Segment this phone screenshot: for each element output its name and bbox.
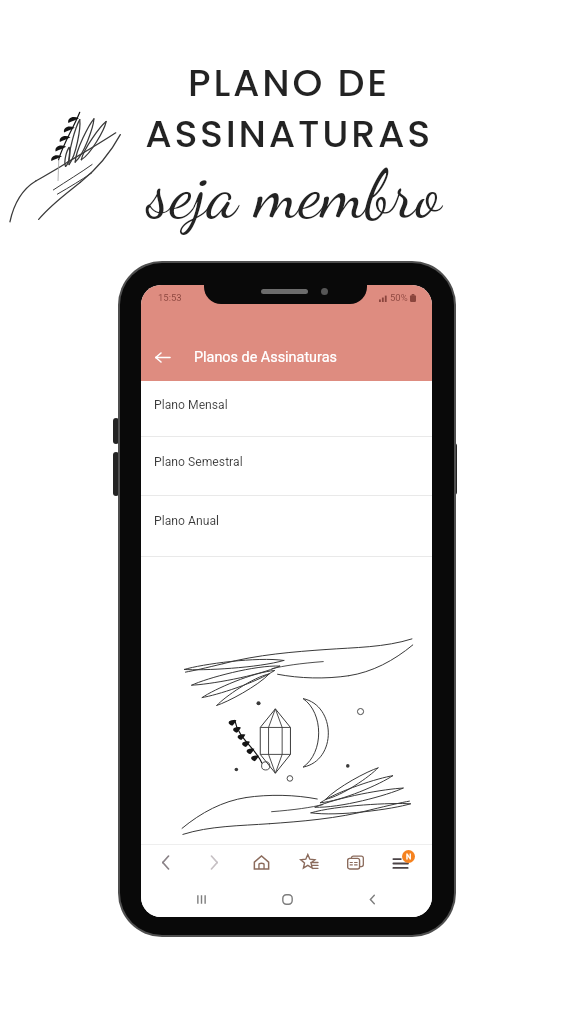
staticText: 50% bbox=[390, 292, 408, 303]
staticText: Plano Anual bbox=[154, 514, 219, 528]
button[interactable]: Plano Semestral bbox=[141, 437, 432, 495]
button[interactable]: Plano Mensal bbox=[141, 381, 432, 436]
button[interactable]: Avançar bbox=[198, 845, 230, 880]
staticText: Plano Semestral bbox=[154, 455, 243, 469]
button[interactable]: Favoritos bbox=[293, 845, 325, 880]
staticText: ASSINATURAS bbox=[145, 107, 433, 160]
button[interactable]: Voltar bbox=[360, 887, 384, 911]
staticText: Plano Mensal bbox=[154, 398, 228, 412]
button[interactable]: Início bbox=[245, 845, 277, 880]
button[interactable]: Plano Anual bbox=[141, 496, 432, 556]
button[interactable]: Início bbox=[275, 887, 299, 911]
staticText: Planos de Assinaturas bbox=[194, 349, 337, 366]
button[interactable]: Recentes bbox=[189, 887, 213, 911]
staticText: seja membro bbox=[147, 153, 442, 235]
button[interactable]: Menu bbox=[384, 845, 416, 880]
button[interactable]: Voltar bbox=[149, 845, 181, 880]
staticText: 15:53 bbox=[158, 292, 182, 303]
button[interactable]: Abas bbox=[339, 845, 371, 880]
staticText: N bbox=[406, 852, 412, 861]
button[interactable]: Voltar bbox=[148, 343, 176, 371]
staticText: PLANO DE bbox=[188, 56, 390, 109]
